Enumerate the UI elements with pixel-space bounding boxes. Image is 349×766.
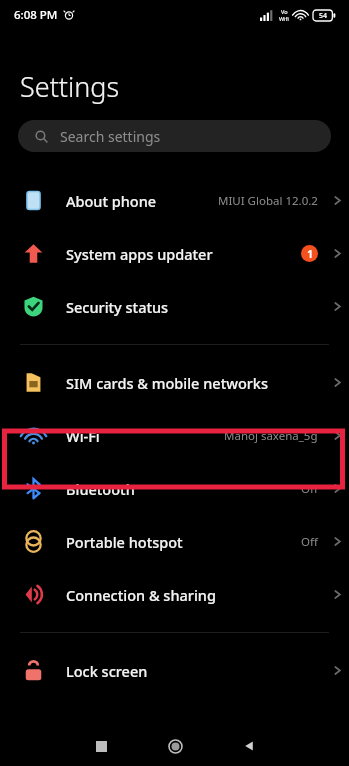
button[interactable]: Portable hotspot xyxy=(0,515,349,568)
staticText: Wi-Fi xyxy=(66,426,100,446)
button[interactable]: SIM cards & mobile networks xyxy=(0,356,349,409)
button[interactable]: Back xyxy=(212,726,286,766)
button[interactable]: Security status xyxy=(0,280,349,333)
button[interactable]: Wi-Fi xyxy=(0,409,349,462)
staticText: Lock screen xyxy=(66,661,148,681)
button[interactable]: Search settings xyxy=(18,120,331,152)
staticText: Manoj saxena_5g xyxy=(224,428,318,444)
staticText: System apps updater xyxy=(66,244,213,264)
staticText: Vo xyxy=(281,8,288,15)
staticText: Search settings xyxy=(60,127,161,146)
button[interactable]: About phone xyxy=(0,174,349,227)
button[interactable]: Home xyxy=(138,726,212,766)
button[interactable]: System apps updater xyxy=(0,227,349,280)
staticText: Off xyxy=(301,534,318,550)
staticText: Wifi xyxy=(279,15,289,22)
staticText: MIUI Global 12.0.2 xyxy=(218,193,318,209)
staticText: 1 xyxy=(307,247,313,261)
staticText: Portable hotspot xyxy=(66,532,183,552)
button[interactable]: Bluetooth xyxy=(0,462,349,515)
button[interactable]: Lock screen xyxy=(0,644,349,697)
staticText: 54 xyxy=(319,11,328,21)
staticText: Bluetooth xyxy=(66,479,135,499)
staticText: SIM cards & mobile networks xyxy=(66,373,269,393)
staticText: Off xyxy=(301,481,318,497)
staticText: Settings xyxy=(20,68,120,105)
staticText: Connection & sharing xyxy=(66,585,216,605)
staticText: 6:08 PM xyxy=(14,7,58,23)
button[interactable]: Connection & sharing xyxy=(0,568,349,621)
button[interactable]: Recent apps xyxy=(64,726,138,766)
staticText: About phone xyxy=(66,191,157,211)
staticText: Security status xyxy=(66,297,169,317)
